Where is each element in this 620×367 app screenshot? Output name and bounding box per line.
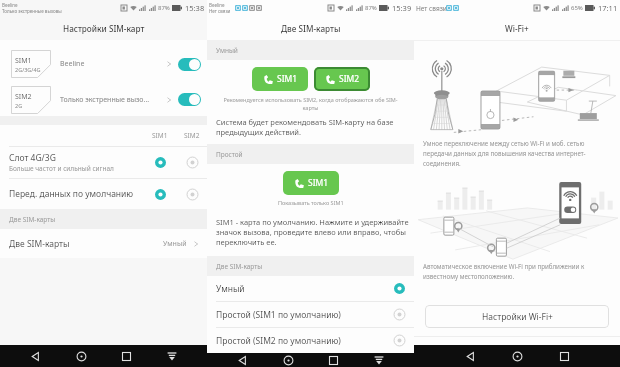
staticText: 87% xyxy=(365,4,377,12)
other: Open xyxy=(165,60,173,68)
button[interactable]: Select xyxy=(186,156,199,169)
staticText: Умный xyxy=(216,283,245,295)
staticText: Только экстренные вызо... xyxy=(60,95,150,105)
staticText: Beeline xyxy=(60,59,85,69)
button[interactable]: Select xyxy=(186,188,199,201)
button[interactable]: SIM1 xyxy=(0,45,207,83)
staticText: Wi-Fi+ xyxy=(505,23,529,34)
other: Open xyxy=(165,96,173,104)
staticText: 15:38 xyxy=(185,3,205,13)
staticText: 87% xyxy=(158,4,170,12)
staticText: Больше частот и сильный сигнал xyxy=(9,164,114,173)
button[interactable]: Select xyxy=(154,156,167,169)
button[interactable]: Home xyxy=(506,345,528,367)
button[interactable]: Back xyxy=(24,345,46,367)
button[interactable]: Back xyxy=(459,345,481,367)
button[interactable]: Hide navigation bar xyxy=(161,345,183,367)
staticText: Две SIM-карты xyxy=(216,262,263,271)
button[interactable]: Toggle xyxy=(178,93,201,106)
button[interactable]: Select xyxy=(393,308,406,321)
staticText: 17:11 xyxy=(598,3,618,13)
staticText: SIM2 xyxy=(15,92,32,102)
button[interactable]: SIM2 xyxy=(314,67,370,91)
staticText: Рекомендуется использовать SIM2, когда о… xyxy=(220,96,401,112)
staticText: Beeline xyxy=(2,2,18,8)
staticText: Настройки Wi-Fi+ xyxy=(482,311,553,323)
button[interactable]: Слот 4G/3G xyxy=(0,147,207,178)
staticText: Только экстренные вызовы xyxy=(2,8,62,14)
staticText: SIM1 xyxy=(15,56,32,66)
button[interactable]: Простой (SIM1 по умолчанию) xyxy=(207,302,414,327)
staticText: Две SIM-карты xyxy=(281,23,341,34)
staticText: Перед. данных по умолчанию xyxy=(9,188,134,200)
button[interactable]: Простой (SIM2 по умолчанию) xyxy=(207,328,414,353)
button[interactable]: Умный xyxy=(207,276,414,301)
button[interactable]: Select xyxy=(393,334,406,347)
button[interactable]: Home xyxy=(277,353,299,367)
staticText: Beeline xyxy=(209,2,225,8)
staticText: 15:39 xyxy=(392,3,412,13)
staticText: Слот 4G/3G xyxy=(9,152,56,164)
staticText: SIM1 xyxy=(152,131,168,140)
button[interactable]: Две SIM-карты xyxy=(0,229,207,258)
staticText: SIM2 xyxy=(339,73,360,85)
button[interactable]: Select xyxy=(393,282,406,295)
other: Open xyxy=(192,240,200,248)
staticText: SIM1 xyxy=(308,177,329,189)
button[interactable]: SIM1 xyxy=(283,171,339,195)
staticText: Нет связи xyxy=(209,8,231,14)
staticText: Две SIM-карты xyxy=(9,238,70,250)
staticText: Простой (SIM1 по умолчанию) xyxy=(216,309,341,321)
button[interactable]: Recents xyxy=(322,353,344,367)
staticText: 65% xyxy=(571,4,583,12)
button[interactable]: Select xyxy=(154,188,167,201)
staticText: Умный xyxy=(216,46,238,55)
button[interactable]: Recents xyxy=(115,345,137,367)
staticText: Система будет рекомендовать SIM-карту на… xyxy=(216,117,405,137)
staticText: SIM1 - карта по умолчанию. Нажмите и уде… xyxy=(216,217,410,247)
staticText: Умное переключение между сетью Wi-Fi и м… xyxy=(423,139,611,168)
button[interactable]: SIM1 xyxy=(252,67,308,91)
button[interactable]: Recents xyxy=(553,345,575,367)
staticText: Настройки SIM-карт xyxy=(63,23,145,34)
staticText: 2G/3G/4G xyxy=(15,66,41,73)
staticText: Показывать только SIM1 xyxy=(278,199,344,206)
button[interactable]: Настройки Wi-Fi+ xyxy=(425,305,609,328)
button[interactable]: Hide navigation bar xyxy=(368,353,390,367)
staticText: Нет связи xyxy=(416,4,447,13)
button[interactable]: Toggle xyxy=(178,58,201,71)
staticText: SIM1 xyxy=(277,73,298,85)
staticText: Автоматическое включение Wi-Fi при прибл… xyxy=(423,262,611,281)
staticText: Умный xyxy=(163,239,187,249)
staticText: SIM2 xyxy=(184,131,200,140)
staticText: Две SIM-карты xyxy=(9,215,56,224)
button[interactable]: Перед. данных по умолчанию xyxy=(0,179,207,209)
button[interactable]: Home xyxy=(70,345,92,367)
button[interactable]: SIM2 xyxy=(0,83,207,116)
staticText: Простой (SIM2 по умолчанию) xyxy=(216,335,341,347)
button[interactable]: Back xyxy=(231,353,253,367)
staticText: Простой xyxy=(216,150,243,159)
staticText: 2G xyxy=(15,102,23,109)
